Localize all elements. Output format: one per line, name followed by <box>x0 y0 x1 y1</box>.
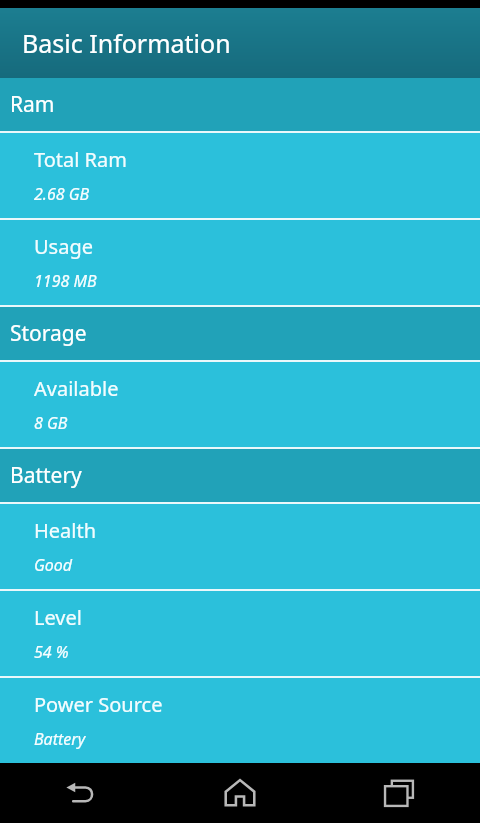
button[interactable]: Battery <box>0 449 480 502</box>
button[interactable]: Home <box>160 763 320 823</box>
staticText: Total Ram <box>34 146 127 173</box>
button[interactable]: Total Ram <box>0 133 480 218</box>
staticText: Good <box>34 554 73 576</box>
staticText: Battery <box>10 461 82 490</box>
button[interactable]: Available <box>0 362 480 447</box>
staticText: Power Source <box>34 691 163 718</box>
button[interactable]: Storage <box>0 307 480 360</box>
button[interactable]: Usage <box>0 220 480 305</box>
button[interactable]: Health <box>0 504 480 589</box>
button[interactable]: Power Source <box>0 678 480 763</box>
staticText: Storage <box>10 319 87 348</box>
staticText: 2.68 GB <box>34 183 90 205</box>
staticText: Level <box>34 604 82 631</box>
staticText: Usage <box>34 233 93 260</box>
staticText: Basic Information <box>22 26 231 60</box>
button[interactable]: Level <box>0 591 480 676</box>
button[interactable]: Back <box>0 763 160 823</box>
staticText: 1198 MB <box>34 270 97 292</box>
button[interactable]: Recents <box>320 763 480 823</box>
staticText: Ram <box>10 90 55 119</box>
staticText: Available <box>34 375 119 402</box>
button[interactable]: Ram <box>0 78 480 131</box>
staticText: Health <box>34 517 97 544</box>
staticText: 54 % <box>34 641 69 663</box>
staticText: Battery <box>34 728 86 750</box>
staticText: 8 GB <box>34 412 68 434</box>
